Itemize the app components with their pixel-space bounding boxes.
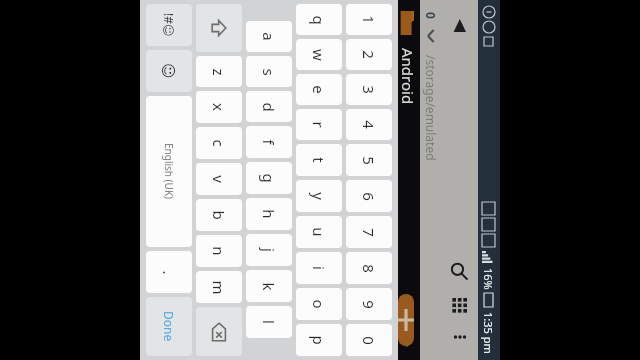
button[interactable]: 2 [346, 39, 392, 70]
staticText: 9 [359, 300, 379, 309]
button[interactable]: 9 [346, 288, 392, 320]
staticText: h [259, 209, 279, 219]
staticText: z [209, 68, 229, 76]
staticText: q [309, 15, 329, 25]
button[interactable]: m [196, 271, 242, 303]
staticText: 6 [359, 192, 379, 201]
staticText: 16% [481, 268, 496, 290]
button[interactable]: . [146, 251, 192, 293]
button[interactable]: 3 [346, 74, 392, 105]
button[interactable]: q [296, 4, 342, 35]
button[interactable]: j [246, 234, 292, 266]
staticText: v [209, 175, 229, 183]
staticText: g [259, 173, 279, 183]
staticText: a [259, 32, 279, 41]
staticText: o [309, 299, 329, 309]
staticText: /storage/emulated [423, 55, 439, 161]
staticText: 5 [359, 156, 379, 165]
staticText: j [259, 248, 279, 252]
button[interactable]: u [296, 216, 342, 248]
staticText: 4 [359, 120, 379, 129]
button[interactable]: l [246, 306, 292, 338]
button[interactable]: Android [398, 0, 418, 360]
staticText: 8 [359, 264, 379, 273]
button[interactable]: v [196, 163, 242, 195]
button[interactable]: English (UK) [146, 96, 192, 247]
button[interactable]: 6 [346, 180, 392, 212]
button[interactable]: 8 [346, 252, 392, 284]
staticText: d [259, 102, 279, 112]
button[interactable]: 7 [346, 216, 392, 248]
staticText: p [309, 335, 329, 345]
button[interactable]: Backspace [196, 307, 242, 356]
staticText: b [209, 210, 229, 220]
staticText: Android [398, 48, 418, 105]
button[interactable]: e [296, 74, 342, 105]
button[interactable]: p [296, 324, 342, 356]
button[interactable]: 4 [346, 109, 392, 140]
staticText: 0 [359, 336, 379, 345]
staticText: e [309, 85, 329, 94]
staticText: u [309, 227, 329, 237]
button[interactable]: 0 [346, 324, 392, 356]
staticText: 0 [423, 12, 439, 19]
staticText: s [259, 68, 279, 76]
staticText: <DIR> [400, 316, 415, 348]
staticText: l [259, 320, 279, 324]
staticText: 3 [359, 85, 379, 94]
staticText: 2 [359, 50, 379, 59]
staticText: n [209, 246, 229, 256]
button[interactable]: Shift [196, 4, 242, 52]
staticText: k [259, 282, 279, 291]
staticText: !#☺ [161, 13, 177, 37]
button[interactable]: Done [146, 297, 192, 356]
button[interactable]: h [246, 198, 292, 230]
button[interactable]: Expand [422, 27, 440, 45]
staticText: 1 [359, 15, 379, 24]
staticText: 7 [359, 228, 379, 237]
button[interactable]: d [246, 91, 292, 122]
button[interactable]: Grid view [443, 288, 477, 322]
staticText: ☺ [160, 63, 177, 79]
button[interactable]: y [296, 180, 342, 212]
staticText: r [309, 121, 329, 128]
button[interactable]: 5 [346, 144, 392, 176]
staticText: m [209, 280, 229, 295]
button[interactable]: Symbols [146, 4, 192, 46]
staticText: . [159, 270, 179, 275]
button[interactable]: n [196, 235, 242, 267]
staticText: w [309, 49, 329, 61]
button[interactable]: 1 [346, 4, 392, 35]
staticText: Done [161, 311, 177, 342]
button[interactable]: x [196, 91, 242, 123]
staticText: English (UK) [162, 143, 176, 200]
button[interactable]: f [246, 126, 292, 158]
staticText: x [209, 103, 229, 111]
button[interactable]: g [246, 162, 292, 194]
button[interactable]: Up [445, 10, 475, 40]
staticText: t [309, 157, 329, 163]
button[interactable]: s [246, 56, 292, 87]
button[interactable]: Add [398, 294, 414, 346]
button[interactable]: o [296, 288, 342, 320]
staticText: i [309, 266, 329, 270]
button[interactable]: z [196, 56, 242, 87]
button[interactable]: r [296, 109, 342, 140]
button[interactable]: w [296, 39, 342, 70]
button[interactable]: i [296, 252, 342, 284]
staticText: y [309, 192, 329, 200]
staticText: c [209, 139, 229, 147]
button[interactable]: t [296, 144, 342, 176]
button[interactable]: Search [443, 254, 477, 288]
staticText: f [259, 139, 279, 145]
button[interactable]: k [246, 270, 292, 302]
button[interactable]: Emoji [146, 50, 192, 92]
button[interactable]: b [196, 199, 242, 231]
staticText: 1:35 pm [481, 312, 496, 354]
button[interactable]: c [196, 127, 242, 159]
button[interactable]: More options [445, 322, 475, 352]
button[interactable]: a [246, 21, 292, 52]
